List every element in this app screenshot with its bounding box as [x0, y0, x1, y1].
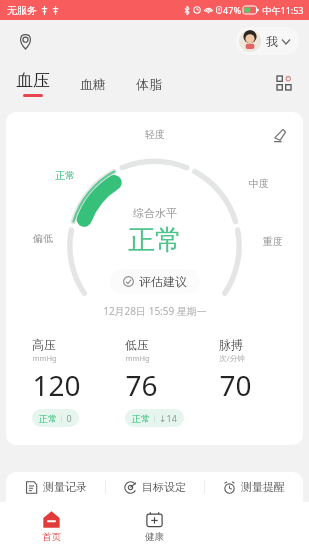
- staticText: 我: [266, 34, 278, 49]
- staticText: 血压: [16, 70, 50, 91]
- button[interactable]: 体脂: [134, 72, 164, 96]
- staticText: 测量记录: [43, 480, 87, 494]
- staticText: 体脂: [136, 76, 162, 92]
- staticText: 0: [66, 412, 72, 424]
- staticText: 正常: [39, 413, 57, 424]
- button[interactable]: Edit: [267, 122, 293, 148]
- button[interactable]: 血压: [14, 70, 52, 97]
- staticText: mmHg: [125, 353, 150, 363]
- staticText: 首页: [42, 531, 61, 543]
- staticText: 47%: [223, 4, 241, 16]
- button[interactable]: 健康: [103, 510, 206, 543]
- staticText: 轻度: [145, 128, 165, 141]
- staticText: 评估建议: [139, 274, 187, 289]
- button[interactable]: 高压: [14, 331, 107, 431]
- staticText: 120: [32, 366, 81, 404]
- staticText: 正常: [132, 413, 150, 424]
- button[interactable]: 我: [236, 27, 299, 55]
- button[interactable]: 脉搏: [201, 331, 295, 428]
- button[interactable]: 首页: [0, 510, 103, 543]
- staticText: 目标设定: [142, 480, 186, 494]
- staticText: 脉搏: [219, 337, 243, 352]
- button[interactable]: More: [271, 70, 297, 96]
- button[interactable]: 目标设定: [106, 480, 204, 494]
- staticText: 重度: [263, 235, 283, 248]
- staticText: 次/分钟: [219, 353, 245, 363]
- staticText: 正常: [128, 223, 182, 257]
- staticText: 偏低: [33, 232, 53, 245]
- button[interactable]: 测量记录: [6, 480, 105, 494]
- button[interactable]: 评估建议: [110, 269, 200, 294]
- staticText: 正常: [55, 169, 75, 182]
- button[interactable]: 低压: [107, 331, 201, 431]
- staticText: 76: [125, 366, 158, 404]
- staticText: 无服务: [7, 4, 37, 17]
- staticText: 12月28日 15:59 星期一: [103, 304, 207, 318]
- staticText: 高压: [32, 337, 56, 352]
- staticText: 中午11:53: [262, 4, 304, 16]
- button[interactable]: Location: [10, 26, 40, 56]
- staticText: mmHg: [32, 353, 57, 363]
- staticText: ↓14: [159, 412, 177, 424]
- staticText: 血糖: [80, 76, 106, 92]
- staticText: 低压: [125, 337, 149, 352]
- button[interactable]: 血糖: [78, 72, 108, 96]
- button[interactable]: 测量提醒: [205, 480, 303, 494]
- staticText: 中度: [249, 177, 269, 190]
- staticText: 健康: [145, 531, 164, 543]
- staticText: 70: [219, 366, 252, 404]
- staticText: 测量提醒: [241, 480, 285, 494]
- staticText: 综合水平: [133, 206, 177, 220]
